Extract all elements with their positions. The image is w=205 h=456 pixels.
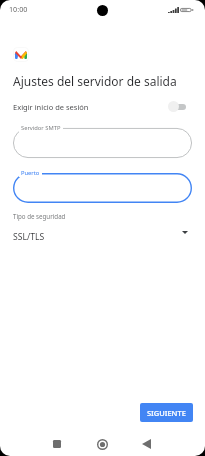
button[interactable]: Exigir inicio de sesión (0, 98, 205, 115)
staticText: Servidor SMTP (21, 124, 61, 132)
button[interactable]: Recents (45, 432, 69, 456)
button[interactable]: Tipo de seguridad (0, 211, 205, 245)
staticText: Tipo de seguridad (13, 212, 66, 220)
button[interactable]: Servidor SMTP (13, 128, 192, 158)
staticText: Puerto (21, 169, 40, 177)
button[interactable] (168, 101, 186, 112)
button[interactable]: Home (90, 432, 114, 456)
button[interactable]: SIGUIENTE (140, 403, 193, 422)
staticText: Exigir inicio de sesión (13, 102, 89, 112)
staticText: Ajustes del servidor de salida (13, 73, 177, 89)
button[interactable]: Back (134, 432, 158, 456)
staticText: SSL/TLS (13, 231, 45, 243)
staticText: SIGUIENTE (147, 408, 186, 418)
staticText: 10:00 (9, 4, 28, 14)
button[interactable]: Puerto (13, 173, 192, 203)
